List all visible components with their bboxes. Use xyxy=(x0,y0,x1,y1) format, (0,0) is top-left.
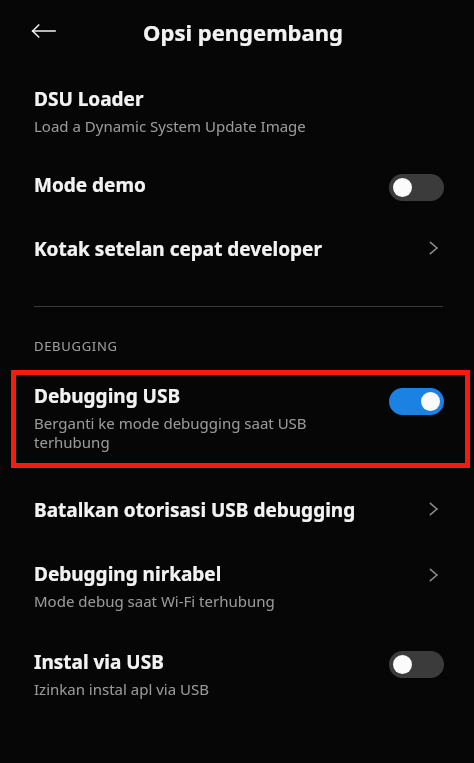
button[interactable]: DSU Loader xyxy=(0,84,474,150)
button[interactable] xyxy=(389,174,444,201)
button[interactable]: Back xyxy=(22,10,64,52)
button[interactable]: Batalkan otorisasi USB debugging xyxy=(0,486,474,542)
staticText: DEBUGGING xyxy=(34,337,118,355)
staticText: Mode debug saat Wi-Fi terhubung xyxy=(34,591,334,611)
button[interactable]: Kotak setelan cepat developer xyxy=(0,224,474,284)
button[interactable] xyxy=(389,651,444,678)
staticText: Opsi pengembang xyxy=(143,17,343,47)
staticText: Debugging nirkabel xyxy=(34,561,222,587)
staticText: Kotak setelan cepat developer xyxy=(34,236,322,262)
staticText: Instal via USB xyxy=(34,649,164,675)
staticText: DSU Loader xyxy=(34,86,144,112)
button[interactable]: Mode demo xyxy=(0,150,474,224)
button[interactable] xyxy=(389,388,444,415)
staticText: Izinkan instal apl via USB xyxy=(34,679,334,699)
staticText: Berganti ke mode debugging saat USB terh… xyxy=(34,413,324,452)
staticText: Mode demo xyxy=(34,172,146,198)
staticText: Debugging USB xyxy=(34,383,181,409)
button[interactable]: Instal via USB xyxy=(0,647,474,713)
staticText: Load a Dynamic System Update Image xyxy=(34,116,334,136)
button[interactable]: Debugging nirkabel xyxy=(0,559,474,625)
button[interactable]: Debugging USB xyxy=(11,370,470,468)
staticText: Batalkan otorisasi USB debugging xyxy=(34,497,356,523)
